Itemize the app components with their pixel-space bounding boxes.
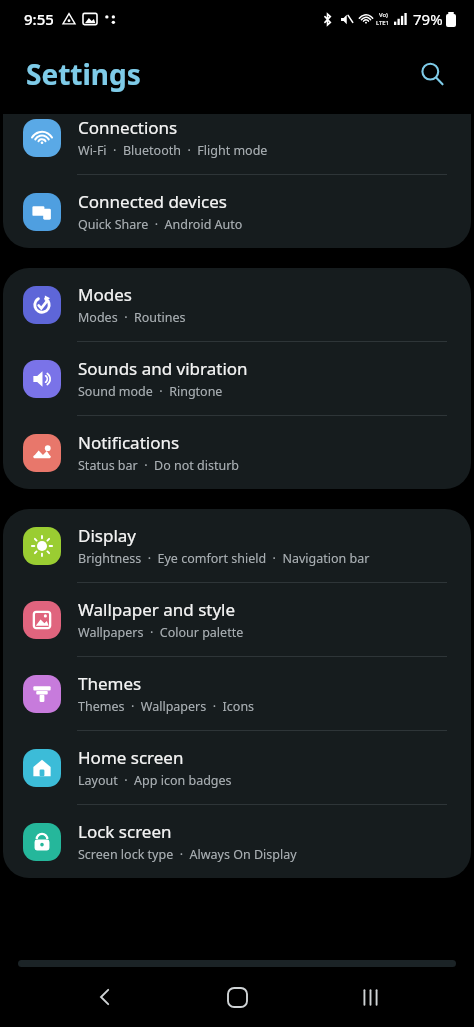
staticText: Wi-Fi · Bluetooth · Flight mode [78,142,268,159]
button[interactable]: Search [408,50,456,98]
staticText: Brightness · Eye comfort shield · Naviga… [78,550,370,567]
button[interactable]: Display [3,509,471,582]
staticText: Quick Share · Android Auto [78,216,243,233]
staticText: Screen lock type · Always On Display [78,846,297,863]
staticText: Layout · App icon badges [78,772,232,789]
staticText: Home screen [78,746,184,769]
staticText: 79% [413,9,443,29]
staticText: Connections [78,116,178,139]
staticText: Vo) [379,11,388,19]
button[interactable]: Sounds and vibration [3,342,471,415]
staticText: Display [78,524,136,547]
staticText: 9:55 [24,9,54,29]
staticText: Themes [78,672,142,695]
button[interactable]: Home [209,969,265,1025]
staticText: Sounds and vibration [78,357,248,380]
button[interactable]: Connected devices [3,175,471,248]
staticText: Settings [26,55,141,93]
button[interactable]: Back [77,969,133,1025]
staticText: Modes · Routines [78,309,186,326]
staticText: Themes · Wallpapers · Icons [78,698,255,715]
button[interactable]: Themes [3,657,471,730]
staticText: LTE1 [376,19,390,27]
button[interactable]: Modes [3,268,471,341]
button[interactable]: Wallpaper and style [3,583,471,656]
staticText: Modes [78,283,132,306]
button[interactable]: Recents [342,969,398,1025]
staticText: Lock screen [78,820,172,843]
button[interactable]: Connections [3,114,471,174]
staticText: Sound mode · Ringtone [78,383,223,400]
button[interactable]: Home screen [3,731,471,804]
staticText: Wallpapers · Colour palette [78,624,244,641]
staticText: Notifications [78,431,180,454]
button[interactable]: Notifications [3,416,471,489]
staticText: Status bar · Do not disturb [78,457,240,474]
staticText: Wallpaper and style [78,598,236,621]
button[interactable]: Lock screen [3,805,471,878]
staticText: Connected devices [78,190,228,213]
